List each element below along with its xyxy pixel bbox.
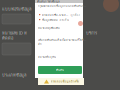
staticText: กรุณาตรวจสอบข้อมูลก่อนกดยืนยันการส่ง [38, 4, 86, 8]
staticText: ประเภทข้อมูล [2, 72, 26, 78]
staticText: ข้อมูลติดต่อ [42, 18, 58, 22]
staticText: ยืนยัน [56, 68, 64, 72]
staticText: ยืนยันการส่งข้อมูล [37, 0, 60, 3]
staticText: ครบถ้วน [59, 18, 69, 22]
button[interactable]: ยืนยัน [38, 66, 82, 74]
staticText: หมายเหตุเพิ่มเติม [38, 26, 60, 30]
staticText: สถานะปัจจุบัน [38, 55, 56, 59]
staticText: แบบฟอร์มข้อมูล [2, 6, 31, 12]
staticText: อีก [38, 42, 42, 46]
staticText: หมายเลข ID ท [2, 30, 27, 36]
staticText: บริการ [86, 30, 97, 36]
staticText: ตรวจสอบข้อมูลอีกครั้ง [50, 79, 78, 83]
staticText: ถูกต้อง [70, 13, 79, 17]
staticText: ตรวจสอบชื่อ-นามสกุล [42, 13, 69, 17]
staticText: เมื่อกดยืนยันแล้วจะไม่สามารถแก้ไขข้อมูลไ… [38, 38, 86, 42]
staticText: ติดต่อ [2, 35, 13, 41]
